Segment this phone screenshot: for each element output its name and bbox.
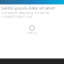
staticText: Lorem ipsum dolor sit amet xyxy=(1,5,55,11)
staticText: Loading xyxy=(26,31,37,35)
staticText: Consectetur adipiscing elit sed do eiusm… xyxy=(1,11,50,18)
